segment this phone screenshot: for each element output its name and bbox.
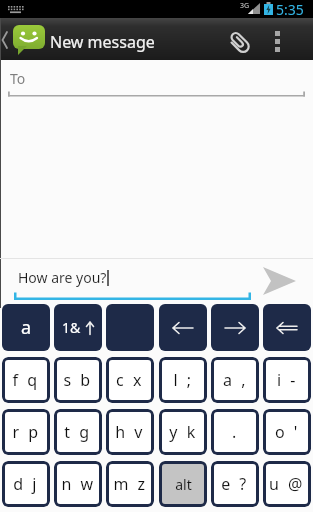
button[interactable]: o ' [263, 409, 311, 455]
button[interactable] [224, 28, 256, 60]
staticText: f q [12, 369, 40, 391]
staticText: u @ [269, 473, 305, 495]
button[interactable]: m z [106, 461, 154, 507]
staticText: m z [113, 473, 148, 495]
button[interactable] [106, 304, 154, 351]
button[interactable]: . [211, 409, 259, 455]
button[interactable]: d j [2, 461, 50, 507]
staticText: alt [175, 475, 192, 494]
staticText: t g [64, 421, 92, 443]
staticText: To [10, 69, 26, 88]
staticText: l ; [173, 369, 194, 391]
staticText: h v [115, 421, 145, 443]
staticText: How are you? [18, 268, 107, 287]
staticText: r p [12, 421, 41, 443]
staticText: New message [50, 31, 155, 53]
button[interactable]: i - [263, 357, 311, 403]
staticText: d j [13, 473, 39, 495]
staticText: a [21, 315, 32, 340]
button[interactable]: l ; [159, 357, 207, 403]
button[interactable]: How are you? [18, 268, 109, 287]
staticText: 1& [62, 318, 81, 337]
staticText: y k [169, 421, 198, 443]
button[interactable] [263, 304, 311, 351]
button[interactable]: c x [106, 357, 154, 403]
button[interactable] [211, 304, 259, 351]
button[interactable]: 1& [54, 304, 102, 351]
staticText: . [232, 421, 239, 443]
button[interactable]: a , [211, 357, 259, 403]
button[interactable]: e ? [211, 461, 259, 507]
staticText: 5:35 [276, 0, 304, 18]
staticText: o ' [275, 421, 300, 443]
staticText: e ? [221, 473, 249, 495]
staticText: n w [61, 473, 96, 495]
button[interactable]: a [2, 304, 50, 351]
button[interactable] [263, 266, 296, 296]
staticText: c x [116, 369, 144, 391]
button[interactable]: f q [2, 357, 50, 403]
button[interactable]: n w [54, 461, 102, 507]
staticText: i - [277, 369, 298, 391]
button[interactable]: s b [54, 357, 102, 403]
button[interactable] [159, 304, 207, 351]
button[interactable]: y k [159, 409, 207, 455]
button[interactable]: r p [2, 409, 50, 455]
button[interactable]: alt [159, 461, 207, 507]
staticText: a , [223, 369, 248, 391]
button[interactable] [275, 31, 287, 55]
staticText: s b [63, 369, 93, 391]
button[interactable] [0, 28, 10, 54]
staticText: 3G [240, 1, 250, 11]
button[interactable]: h v [106, 409, 154, 455]
button[interactable]: u @ [263, 461, 311, 507]
button[interactable]: t g [54, 409, 102, 455]
